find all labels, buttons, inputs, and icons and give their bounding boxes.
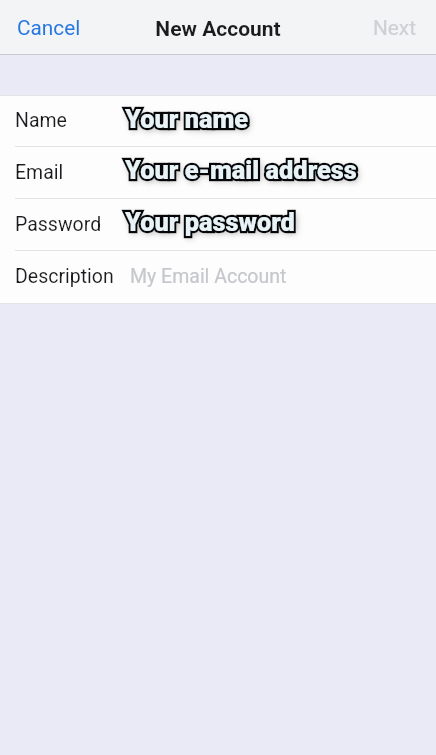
- staticText: Cancel: [17, 16, 81, 40]
- staticText: Your password: [125, 207, 295, 237]
- staticText: Email: [15, 161, 64, 184]
- button[interactable]: Email: [0, 147, 436, 199]
- button[interactable]: Password: [0, 199, 436, 251]
- button[interactable]: Cancel: [0, 0, 436, 54]
- staticText: Description: [15, 265, 114, 288]
- staticText: Your e-mail address: [125, 155, 357, 185]
- staticText: Name: [15, 109, 67, 132]
- button[interactable]: Description: [0, 251, 436, 303]
- staticText: Next: [373, 16, 416, 40]
- staticText: Your name: [125, 104, 249, 134]
- button[interactable]: Next: [346, 0, 436, 54]
- staticText: Your password: [125, 207, 295, 237]
- staticText: Your e-mail address: [125, 155, 357, 185]
- staticText: Your name: [125, 104, 249, 134]
- button[interactable]: Name: [0, 96, 436, 147]
- staticText: New Account: [155, 17, 281, 42]
- staticText: Password: [15, 213, 102, 236]
- staticText: My Email Account: [130, 265, 287, 288]
